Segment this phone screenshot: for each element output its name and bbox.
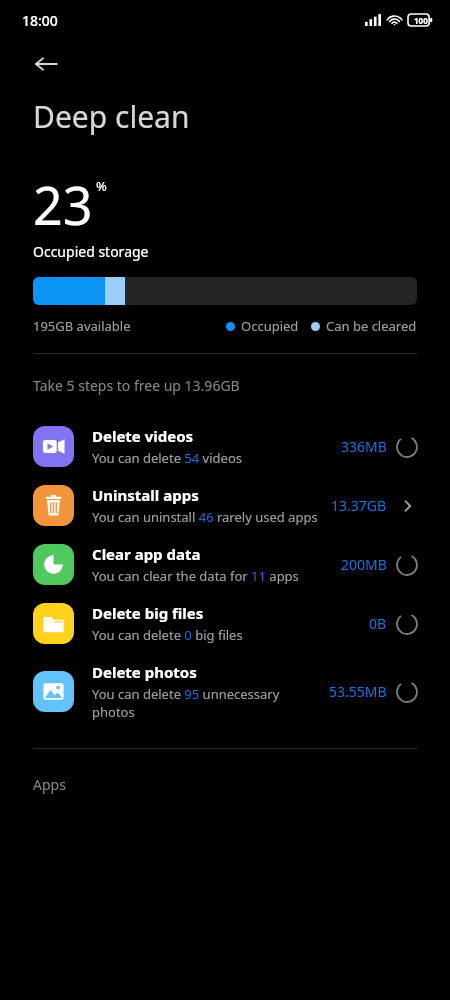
- staticText: 336MB: [341, 437, 387, 456]
- button[interactable]: Delete photos: [0, 653, 450, 730]
- staticText: Clear app data: [92, 544, 201, 564]
- button[interactable]: Clear app data: [0, 535, 450, 594]
- staticText: Take 5 steps to free up 13.96GB: [33, 376, 240, 395]
- staticText: 23: [33, 169, 93, 240]
- button[interactable]: Back: [22, 40, 70, 88]
- staticText: Delete photos: [92, 662, 197, 682]
- staticText: 0B: [369, 614, 387, 633]
- staticText: You can clear the data for 11 apps: [92, 567, 299, 585]
- staticText: 18:00: [22, 11, 58, 30]
- staticText: Uninstall apps: [92, 485, 199, 505]
- staticText: 100: [414, 15, 428, 26]
- staticText: 53.55MB: [329, 682, 387, 701]
- staticText: You can delete 0 big files: [92, 626, 243, 644]
- staticText: 195GB available: [33, 317, 131, 335]
- staticText: %: [96, 177, 107, 195]
- staticText: Delete videos: [92, 426, 194, 446]
- staticText: Occupied: [241, 317, 299, 335]
- staticText: 13.37GB: [331, 496, 387, 515]
- staticText: Apps: [33, 775, 66, 794]
- staticText: You can delete 95 unnecessary photos: [92, 685, 321, 721]
- button[interactable]: Delete videos: [0, 417, 450, 476]
- staticText: You can uninstall 46 rarely used apps: [92, 508, 318, 526]
- button[interactable]: Uninstall apps: [0, 476, 450, 535]
- staticText: Occupied storage: [33, 242, 149, 261]
- staticText: You can delete 54 videos: [92, 449, 242, 467]
- staticText: Delete big files: [92, 603, 204, 623]
- staticText: 200MB: [341, 555, 387, 574]
- staticText: Can be cleared: [326, 317, 417, 335]
- button[interactable]: Delete big files: [0, 594, 450, 653]
- staticText: Deep clean: [33, 96, 190, 137]
